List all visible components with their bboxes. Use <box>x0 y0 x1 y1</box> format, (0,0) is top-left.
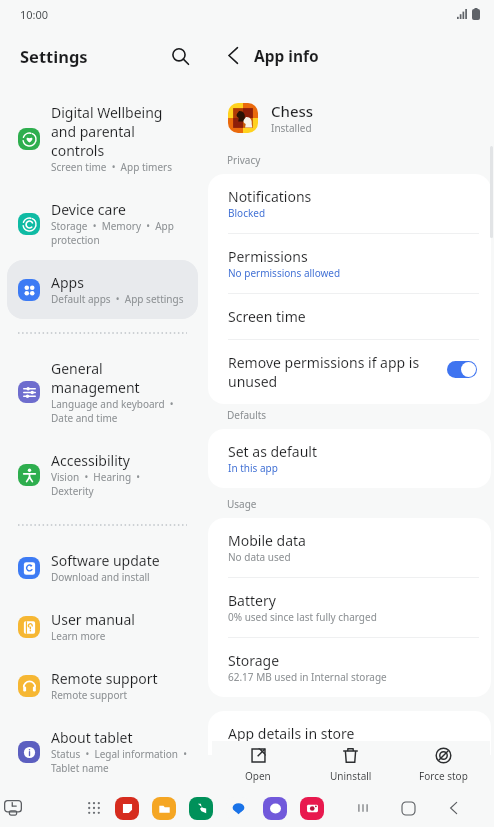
button[interactable]: Set as default <box>208 429 491 488</box>
staticText: Blocked <box>228 206 266 220</box>
staticText: Storage <box>228 651 280 670</box>
button[interactable]: Mobile data <box>208 518 491 577</box>
staticText: 0% used since last fully charged <box>228 610 377 624</box>
staticText: Installed <box>271 121 312 135</box>
staticText: Privacy <box>227 153 261 167</box>
staticText: Status • Legal information • Tablet name <box>51 747 187 775</box>
button[interactable]: Back <box>442 797 464 819</box>
staticText: Storage • Memory • App protection <box>51 219 174 247</box>
staticText: No permissions allowed <box>228 266 341 280</box>
button[interactable]: Home <box>397 797 419 819</box>
button[interactable]: Software update <box>7 538 198 597</box>
staticText: Accessibility <box>51 451 130 470</box>
staticText: Notifications <box>228 187 312 206</box>
staticText: 10:00 <box>20 7 49 22</box>
button[interactable]: Camera <box>300 797 324 820</box>
button[interactable]: Uninstall <box>304 741 397 789</box>
staticText: Remove permissions if app is unused <box>228 353 447 391</box>
button[interactable]: Notifications <box>208 174 491 233</box>
button[interactable]: Recents <box>352 797 374 819</box>
staticText: Usage <box>227 497 257 511</box>
staticText: In this app <box>228 461 278 475</box>
button[interactable]: User manual <box>7 597 198 656</box>
staticText: User manual <box>51 610 135 629</box>
button[interactable]: Search <box>164 40 196 72</box>
staticText: Open <box>245 769 271 783</box>
button[interactable]: Battery <box>208 578 491 637</box>
staticText: Permissions <box>228 247 308 266</box>
staticText: Download and install <box>51 570 150 584</box>
staticText: Battery <box>228 591 276 610</box>
staticText: Chess <box>271 101 314 121</box>
button[interactable]: Digital Wellbeing and parental controls <box>7 90 198 187</box>
button[interactable]: My Files <box>152 797 176 820</box>
button[interactable]: Samsung Notes <box>115 797 139 820</box>
button[interactable]: About tablet <box>7 715 198 788</box>
staticText: 62.17 MB used in Internal storage <box>228 670 387 684</box>
button[interactable]: Open <box>212 741 304 789</box>
staticText: Device care <box>51 200 126 219</box>
staticText: Settings <box>20 45 88 67</box>
staticText: Remote support <box>51 688 128 702</box>
staticText: No data used <box>228 550 291 564</box>
button[interactable]: Recent apps panel <box>1 796 25 820</box>
button[interactable]: Remove permissions if app is unused <box>208 340 491 404</box>
staticText: Set as default <box>228 442 317 461</box>
button[interactable]: Screen time <box>208 294 491 339</box>
staticText: Screen time <box>228 307 306 326</box>
staticText: Uninstall <box>330 769 372 783</box>
staticText: Force stop <box>419 769 468 783</box>
staticText: Language and keyboard • Date and time <box>51 397 174 425</box>
staticText: Screen time • App timers <box>51 160 173 174</box>
button[interactable]: Back <box>217 40 248 71</box>
staticText: App details in store <box>228 724 355 743</box>
staticText: About tablet <box>51 728 133 747</box>
button[interactable]: Messages <box>226 797 250 820</box>
staticText: Apps <box>51 273 84 292</box>
button[interactable]: App details in store <box>208 711 491 755</box>
staticText: General management <box>51 359 140 397</box>
button[interactable]: Permissions <box>208 234 491 293</box>
button[interactable]: Internet <box>263 797 287 820</box>
staticText: Remote support <box>51 669 158 688</box>
button[interactable]: Phone <box>189 797 213 820</box>
staticText: App info <box>254 45 319 66</box>
staticText: Vision • Hearing • Dexterity <box>51 470 140 498</box>
staticText: Default apps • App settings <box>51 292 184 306</box>
staticText: Learn more <box>51 629 106 643</box>
button[interactable]: All apps <box>82 796 106 820</box>
button[interactable]: Device care <box>7 187 198 260</box>
button[interactable]: Apps <box>7 260 198 319</box>
button[interactable]: Storage <box>208 638 491 697</box>
button[interactable]: Force stop <box>397 741 490 789</box>
button[interactable]: Remote support <box>7 656 198 715</box>
button[interactable]: General management <box>7 346 198 438</box>
button[interactable]: Accessibility <box>7 438 198 511</box>
staticText: Defaults <box>227 408 267 422</box>
staticText: Mobile data <box>228 531 306 550</box>
staticText: Software update <box>51 551 160 570</box>
staticText: Digital Wellbeing and parental controls <box>51 103 163 160</box>
